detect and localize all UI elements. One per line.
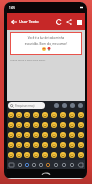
button[interactable]: Emoji <box>15 110 23 120</box>
button[interactable]: Emoji <box>40 110 49 120</box>
button[interactable]: Emoji <box>49 130 58 140</box>
button[interactable]: Emoji <box>49 140 58 150</box>
button[interactable]: Emoji <box>58 110 67 120</box>
button[interactable]: Emoji <box>40 150 49 160</box>
button[interactable]: Emoji category <box>60 160 68 169</box>
button[interactable]: Emoji <box>31 150 40 160</box>
button[interactable]: Emoji <box>76 150 85 160</box>
staticText: Pesquisar emoji <box>15 104 35 108</box>
button[interactable]: Emoji <box>15 150 23 160</box>
button[interactable]: Emoji category <box>23 160 30 169</box>
staticText: Você é a luz de toda minha escuridão. Bo… <box>24 36 68 46</box>
button[interactable]: Emoji <box>67 130 76 140</box>
button[interactable]: Emoji category <box>68 160 76 169</box>
button[interactable]: Emoji <box>76 130 85 140</box>
button[interactable]: Emoji <box>15 120 23 130</box>
button[interactable]: Emoji category <box>44 160 52 169</box>
button[interactable]: Emoji <box>67 120 76 130</box>
button[interactable]: Emoji <box>31 110 40 120</box>
button[interactable]: Usar Texto <box>19 19 39 24</box>
button[interactable]: Emoji <box>58 150 67 160</box>
button[interactable]: Keyboard <box>7 160 16 169</box>
button[interactable]: Emoji <box>7 150 15 160</box>
button[interactable]: Emoji <box>67 150 76 160</box>
button[interactable]: Emoji <box>67 110 76 120</box>
button[interactable]: Emoji category <box>52 160 60 169</box>
button[interactable]: Emoji <box>23 150 31 160</box>
button[interactable]: Emoji category <box>16 160 23 169</box>
button[interactable]: Save <box>74 17 84 27</box>
button[interactable]: Emoji <box>31 120 40 130</box>
staticText: Clique sobre o texto para editar <box>10 58 46 61</box>
button[interactable]: Emoji category <box>30 160 37 169</box>
button[interactable]: Emoji <box>76 140 85 150</box>
button[interactable]: Emoji <box>7 110 15 120</box>
button[interactable]: Emoji <box>40 140 49 150</box>
button[interactable]: Emoji <box>7 120 15 130</box>
button[interactable]: Emoji <box>23 130 31 140</box>
button[interactable]: Emoji <box>23 110 31 120</box>
button[interactable]: Emoji <box>23 140 31 150</box>
button[interactable]: Pesquisar emoji <box>8 102 45 109</box>
button[interactable]: Emoji <box>7 140 15 150</box>
button[interactable]: Emoji <box>23 120 31 130</box>
button[interactable]: Backspace <box>76 160 85 169</box>
button[interactable]: Recent emoji <box>60 102 68 109</box>
button[interactable]: Emoji <box>49 150 58 160</box>
button[interactable]: Emoji <box>7 130 15 140</box>
button[interactable]: Emoji <box>76 120 85 130</box>
button[interactable]: Back <box>8 16 19 27</box>
button[interactable]: Emoji <box>58 140 67 150</box>
button[interactable]: Emoji <box>31 140 40 150</box>
button[interactable]: Recent emoji <box>76 102 84 109</box>
button[interactable]: Reset <box>54 17 64 27</box>
button[interactable]: Recent emoji <box>52 102 60 109</box>
button[interactable]: Emoji <box>58 130 67 140</box>
button[interactable]: Emoji <box>31 130 40 140</box>
button[interactable]: Emoji <box>49 120 58 130</box>
button[interactable]: Emoji <box>15 130 23 140</box>
button[interactable]: Você é a luz de toda minha escuridão. Bo… <box>10 32 82 55</box>
button[interactable]: Emoji <box>40 130 49 140</box>
staticText: 1:05 <box>9 6 15 10</box>
button[interactable]: Emoji <box>67 140 76 150</box>
button[interactable]: Emoji <box>58 120 67 130</box>
button[interactable]: Emoji <box>49 110 58 120</box>
button[interactable]: Share <box>64 17 74 27</box>
button[interactable]: Emoji category <box>37 160 44 169</box>
button[interactable]: Emoji <box>40 120 49 130</box>
button[interactable]: Emoji <box>76 110 85 120</box>
button[interactable]: Emoji <box>15 140 23 150</box>
button[interactable]: Recent emoji <box>68 102 76 109</box>
